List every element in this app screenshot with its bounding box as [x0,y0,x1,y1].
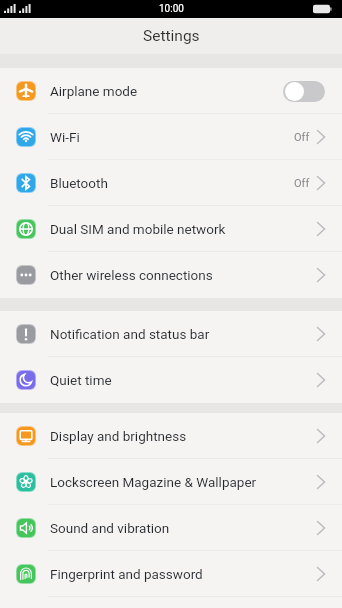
button[interactable]: Fingerprint and password [0,551,342,597]
staticText: Notification and status bar [50,326,210,342]
button[interactable]: Wi-Fi [0,114,342,160]
staticText: Off [294,177,310,190]
button[interactable]: Sound and vibration [0,505,342,551]
button[interactable]: Quiet time [0,357,342,403]
staticText: Off [294,131,310,144]
button[interactable]: Display and brightness [0,413,342,459]
button[interactable]: Airplane mode [0,68,342,114]
button[interactable]: Notification and status bar [0,311,342,357]
staticText: Quiet time [50,372,112,388]
button[interactable]: Bluetooth [0,160,342,206]
staticText: 10:00 [159,3,184,15]
staticText: Dual SIM and mobile network [50,221,226,237]
button[interactable]: Dual SIM and mobile network [0,206,342,252]
staticText: Airplane mode [50,83,138,99]
staticText: Lockscreen Magazine & Wallpaper [50,474,257,490]
staticText: Sound and vibration [50,520,170,536]
staticText: Bluetooth [50,175,108,191]
button[interactable]: Lockscreen Magazine & Wallpaper [0,459,342,505]
staticText: Display and brightness [50,428,187,444]
staticText: Wi-Fi [50,129,80,145]
staticText: Settings [143,27,200,45]
staticText: Fingerprint and password [50,566,203,582]
button[interactable]: Other wireless connections [0,252,342,298]
staticText: Other wireless connections [50,267,213,283]
